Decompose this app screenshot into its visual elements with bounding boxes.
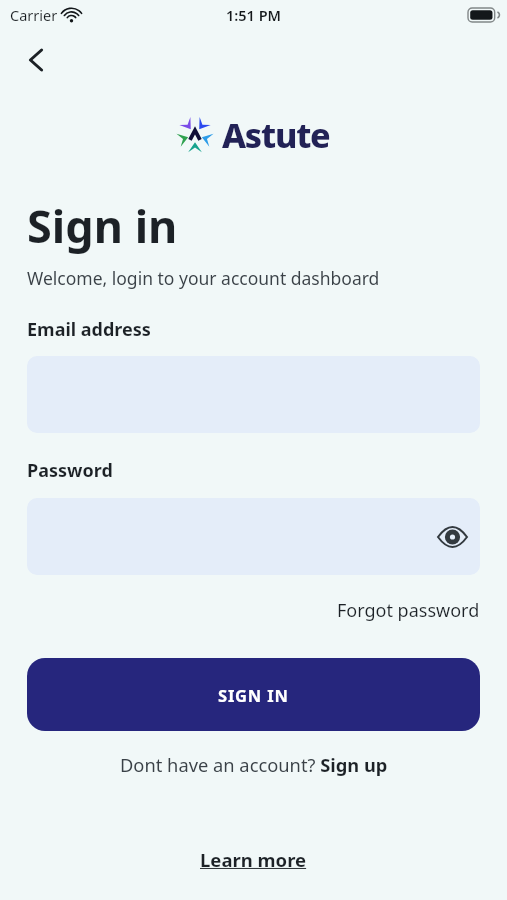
button[interactable]: Forgot password xyxy=(337,598,480,623)
button[interactable]: Dont have an account? Sign up xyxy=(27,752,480,777)
staticText: Email address xyxy=(27,317,151,342)
staticText: Dont have an account? Sign up xyxy=(120,752,388,777)
staticText: Password xyxy=(27,458,113,483)
staticText: Welcome, login to your account dashboard xyxy=(27,266,380,290)
button[interactable] xyxy=(18,42,54,78)
button[interactable]: SIGN IN xyxy=(27,658,480,731)
button[interactable]: Learn more xyxy=(200,847,307,872)
staticText: Astute xyxy=(222,112,330,158)
staticText: 1:51 PM xyxy=(226,5,282,25)
staticText: Sign in xyxy=(27,195,178,256)
staticText: SIGN IN xyxy=(218,684,289,706)
button[interactable] xyxy=(27,498,480,575)
staticText: Carrier xyxy=(10,5,58,25)
